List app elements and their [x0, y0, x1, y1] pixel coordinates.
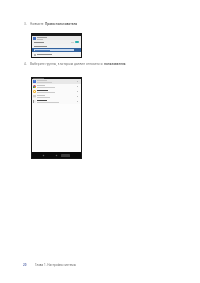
button[interactable]: Select group — [32, 94, 81, 99]
button[interactable]: Select group — [32, 89, 81, 94]
button[interactable] — [32, 34, 81, 57]
staticText: пользователь — [104, 62, 126, 66]
staticText: Права пользователя — [45, 22, 78, 26]
staticText: Выберите группы, к которым должен относи… — [30, 62, 104, 66]
staticText: Нажмите — [30, 22, 45, 26]
button[interactable] — [32, 52, 81, 57]
button[interactable] — [32, 48, 81, 52]
button[interactable]: Select group — [32, 79, 81, 84]
staticText: 3. — [24, 22, 27, 26]
button[interactable]: Select group — [32, 99, 81, 104]
button[interactable] — [32, 44, 81, 48]
button[interactable]: Select group — [32, 78, 81, 158]
button[interactable]: Back — [42, 154, 45, 157]
staticText: Глава 1. Настройка системы — [35, 263, 76, 267]
button[interactable]: Select group — [32, 84, 81, 89]
button[interactable] — [32, 40, 81, 44]
button[interactable]: Home — [55, 154, 58, 157]
staticText: 20 — [23, 263, 27, 267]
staticText: 4. — [24, 62, 27, 66]
